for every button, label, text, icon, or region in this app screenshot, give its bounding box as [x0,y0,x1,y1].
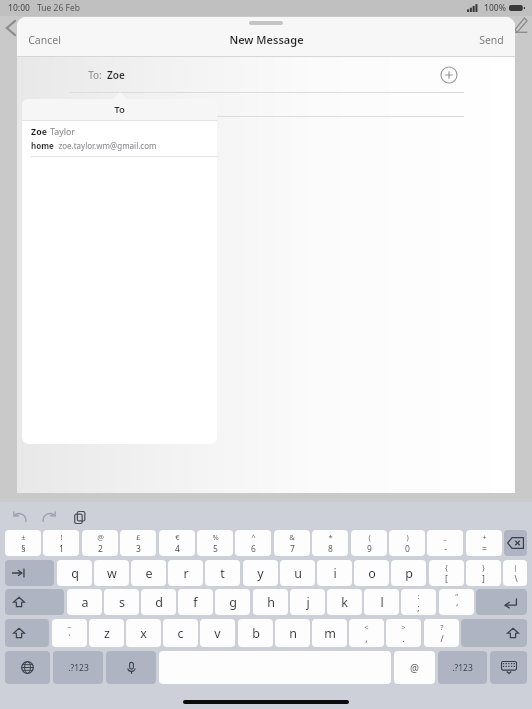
button[interactable]: Shift [5,589,64,615]
button[interactable]: ! [43,530,79,556]
button[interactable]: Cancel [17,28,72,52]
button[interactable]: £ [120,530,156,556]
button[interactable]: y [243,560,278,586]
button[interactable]: € [159,530,195,556]
button[interactable]: a [67,589,102,615]
staticText: New Message [229,32,304,47]
staticText: home [31,140,54,151]
button[interactable]: u [280,560,315,586]
button[interactable]: e [131,560,166,586]
button[interactable]: t [205,560,240,586]
button[interactable]: ~ [52,619,87,647]
staticText: f [193,594,198,611]
button[interactable]: q [57,560,92,586]
button[interactable]: o [354,560,389,586]
button[interactable]: : [401,589,436,615]
button[interactable]: b [238,619,273,647]
button[interactable]: “ [439,589,474,615]
button[interactable]: r [168,560,203,586]
button[interactable]: Hide keyboard [490,651,527,684]
button[interactable]: Backspace [504,530,527,556]
staticText: £ [136,532,141,542]
staticText: = [482,543,487,555]
button[interactable]: Undo [10,508,30,526]
button[interactable]: ( [351,530,387,556]
button[interactable]: < [349,619,384,647]
staticText: : [417,591,420,601]
button[interactable]: n [275,619,310,647]
staticText: 2 [98,543,103,555]
button[interactable]: s [104,589,139,615]
button[interactable]: ± [5,530,41,556]
button[interactable]: k [327,589,362,615]
button[interactable]: Change keyboard [5,651,50,684]
staticText: zoe.taylor.wm@gmail.com [58,140,157,151]
staticText: @ [97,532,104,542]
staticText: Zoe [107,68,125,82]
button[interactable]: ? [424,619,459,647]
button[interactable]: Dictate [106,651,156,684]
staticText: Taylor [50,126,75,138]
button[interactable]: Return [476,589,527,615]
button[interactable]: Redo [39,508,59,526]
staticText: h [267,594,275,611]
button[interactable]: h [253,589,288,615]
button[interactable]: Send [468,28,515,52]
button[interactable]: > [386,619,421,647]
button[interactable]: .?123 [438,651,487,684]
button[interactable]: Add contact [440,66,458,84]
button[interactable]: _ [427,530,463,556]
button[interactable]: { [429,560,464,586]
button[interactable]: ^ [235,530,271,556]
button[interactable]: & [274,530,310,556]
staticText: g [229,594,237,611]
staticText: _ [443,532,447,542]
button[interactable]: f [178,589,213,615]
staticText: € [175,532,180,542]
staticText: Cc/Bcc, From: [88,98,152,112]
button[interactable]: m [312,619,347,647]
button[interactable]: z [89,619,124,647]
staticText: & [289,532,295,542]
staticText: ? [440,622,444,632]
button[interactable]: j [290,589,325,615]
button[interactable]: x [126,619,161,647]
staticText: 1 [59,543,64,555]
staticText: x [140,625,147,642]
button[interactable]: .?123 [53,651,103,684]
button[interactable]: + [466,530,502,556]
button[interactable]: g [215,589,250,615]
button[interactable]: Zoe [22,121,217,156]
staticText: ; [417,602,420,614]
button[interactable]: v [200,619,235,647]
button[interactable]: w [94,560,129,586]
staticText: ‘ [456,602,458,614]
staticText: p [405,565,413,582]
button[interactable]: % [197,530,233,556]
staticText: .?123 [68,662,89,674]
button[interactable]: * [312,530,348,556]
button[interactable]: i [317,560,352,586]
button[interactable]: d [141,589,176,615]
staticText: s [119,594,125,611]
staticText: j [306,594,310,611]
button[interactable]: Shift [461,619,527,647]
button[interactable]: Paste [70,508,90,526]
button[interactable]: Tab [5,560,54,586]
button[interactable]: c [163,619,198,647]
button[interactable]: Shift [5,619,49,647]
button[interactable]: | [503,560,527,586]
button[interactable]: l [364,589,399,615]
button[interactable]: } [466,560,501,586]
button[interactable]: p [391,560,426,586]
staticText: Tue 26 Feb [37,2,80,14]
staticText: ! [60,532,63,542]
button[interactable]: @ [82,530,118,556]
staticText: Cancel [28,33,61,47]
staticText: t [220,565,225,582]
staticText: c [177,625,184,642]
button[interactable]: @ [394,651,435,684]
staticText: ^ [251,532,256,542]
button[interactable]: ) [389,530,425,556]
